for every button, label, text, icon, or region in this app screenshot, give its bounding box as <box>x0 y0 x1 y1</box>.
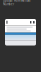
button[interactable]: Search <box>30 21 31 23</box>
button[interactable]: More <box>33 21 35 23</box>
staticText: Update From Welfare Number <box>3 0 31 6</box>
button[interactable]: Back <box>6 21 7 24</box>
